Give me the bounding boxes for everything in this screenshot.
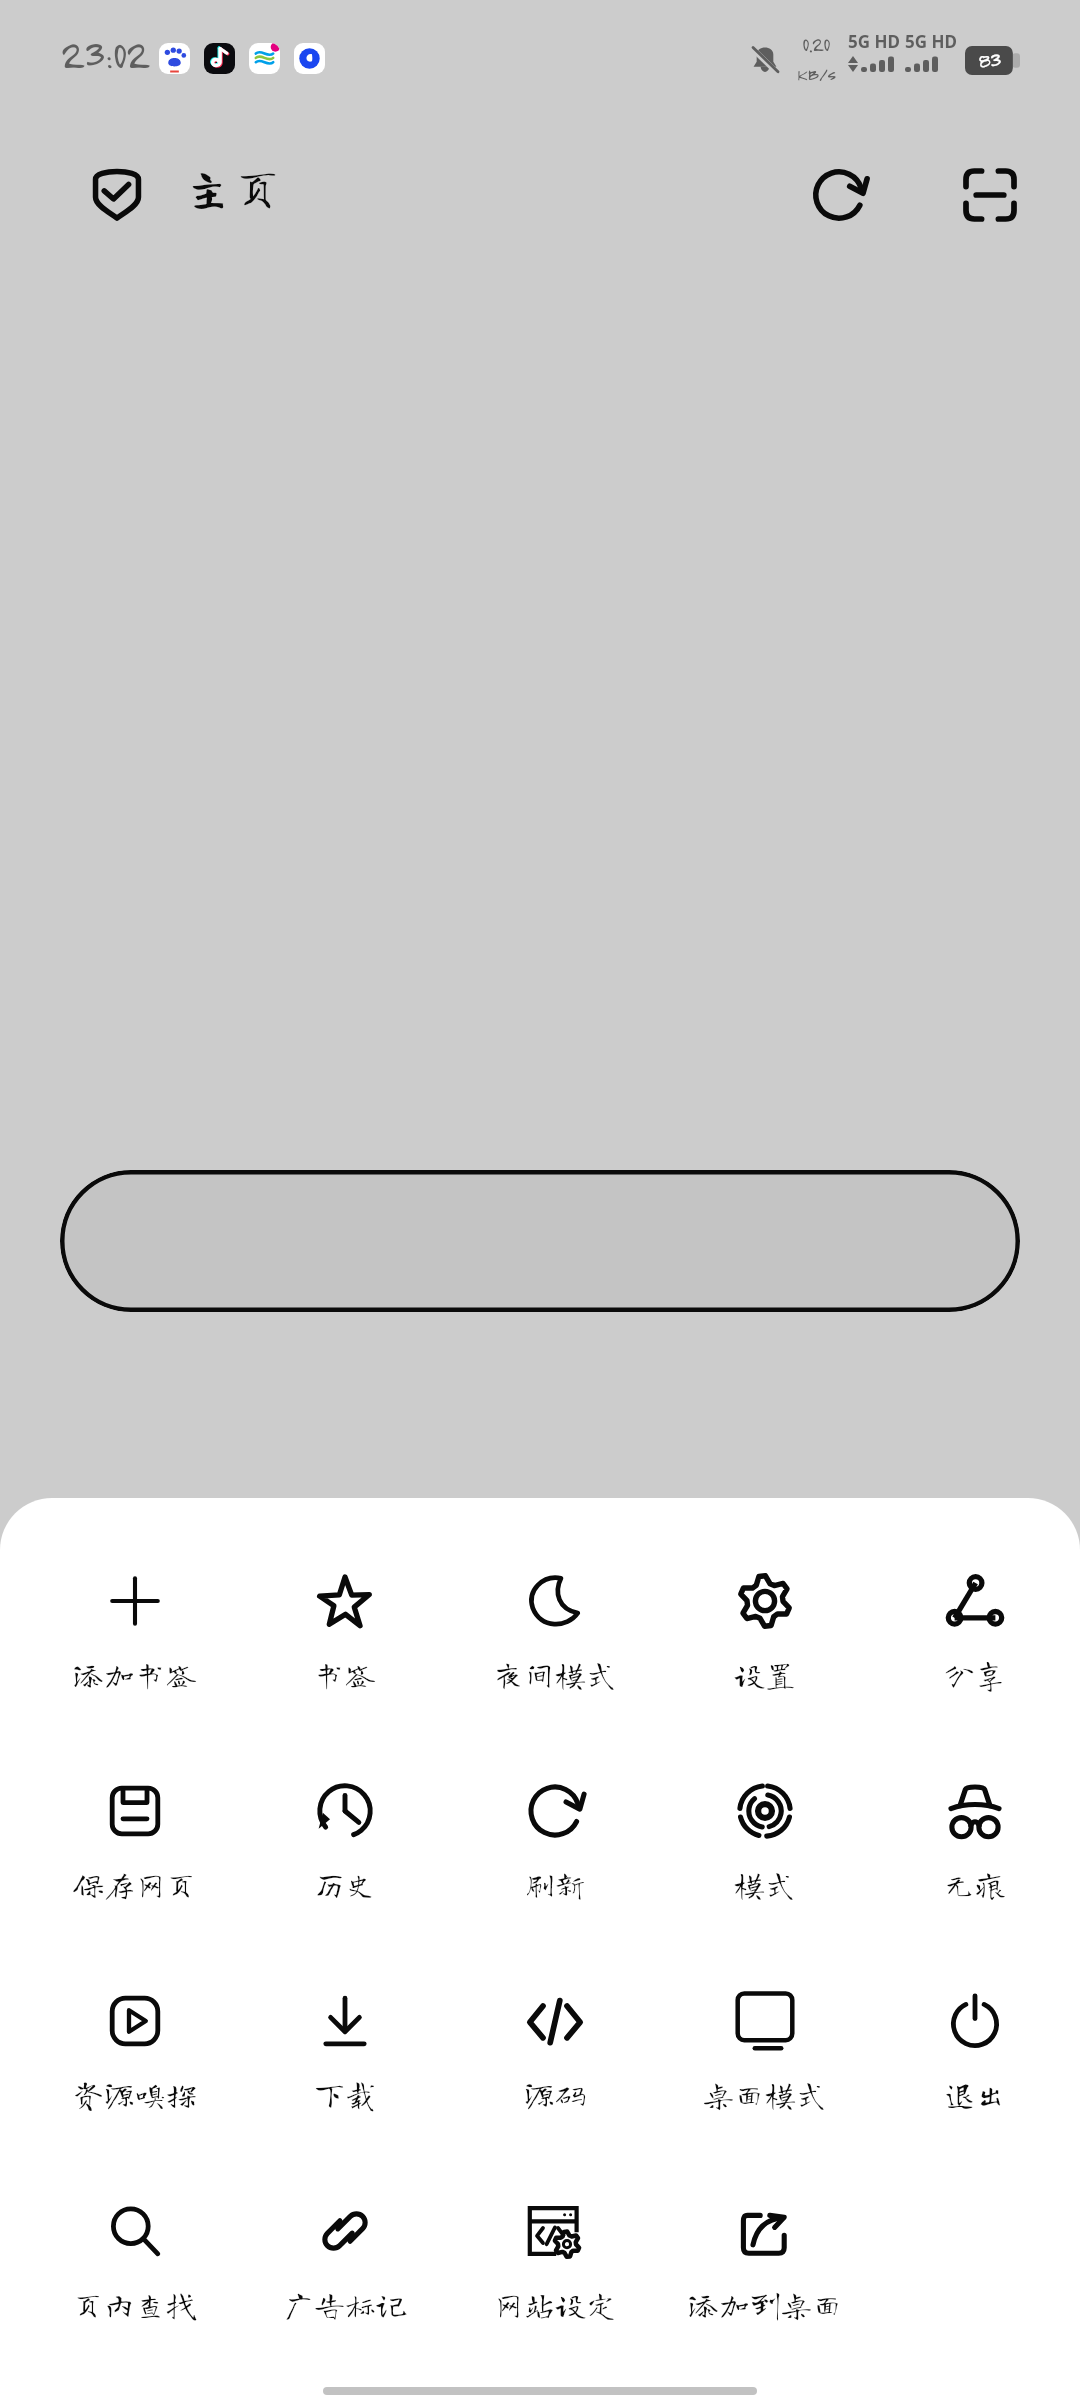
staticText: 模式	[734, 1869, 796, 1900]
button[interactable]: 页内查找	[30, 2197, 240, 2400]
staticText: 刷新	[524, 1869, 586, 1900]
button[interactable]: 资源嗅探	[30, 1987, 240, 2197]
staticText: 5G HD	[905, 30, 957, 53]
button[interactable]: 书签	[240, 1567, 450, 1777]
staticText: 5G HD	[848, 30, 900, 53]
button[interactable]: 主页	[88, 142, 307, 242]
staticText: 下载	[314, 2079, 376, 2110]
staticText: 0.20	[802, 31, 830, 56]
staticText: 夜间模式	[493, 1659, 617, 1690]
button[interactable]: 广告标记	[240, 2197, 450, 2400]
button[interactable]: Scan	[942, 147, 1038, 243]
button[interactable]: 夜间模式	[450, 1567, 660, 1777]
button[interactable]: 刷新	[450, 1777, 660, 1987]
button[interactable]: Refresh	[791, 147, 887, 243]
staticText: 历史	[314, 1869, 376, 1900]
button[interactable]: 源码	[450, 1987, 660, 2197]
button[interactable]: 网站设定	[450, 2197, 660, 2400]
button[interactable]: 保存网页	[30, 1777, 240, 1987]
staticText: 分享	[944, 1659, 1006, 1690]
button[interactable]: Search	[60, 1170, 1020, 1312]
staticText: 无痕	[944, 1869, 1006, 1900]
staticText: 页内查找	[73, 2289, 197, 2320]
staticText: 广告标记	[283, 2289, 407, 2320]
button[interactable]: 分享	[870, 1567, 1080, 1777]
staticText: 23:02	[60, 28, 149, 78]
staticText: 源码	[524, 2079, 586, 2110]
staticText: 添加到桌面	[688, 2289, 843, 2320]
staticText: 添加书签	[73, 1659, 197, 1690]
staticText: 资源嗅探	[73, 2079, 197, 2110]
staticText: 桌面模式	[703, 2079, 827, 2110]
button[interactable]: 设置	[660, 1567, 870, 1777]
staticText: 退出	[944, 2079, 1006, 2110]
staticText: 书签	[314, 1659, 376, 1690]
button[interactable]: 添加书签	[30, 1567, 240, 1777]
button[interactable]: 退出	[870, 1987, 1080, 2197]
button[interactable]: 添加到桌面	[660, 2197, 870, 2400]
button[interactable]: 模式	[660, 1777, 870, 1987]
staticText: KB/s	[797, 62, 836, 85]
staticText: 设置	[734, 1659, 796, 1690]
staticText: 主页	[183, 162, 283, 212]
button[interactable]: 下载	[240, 1987, 450, 2197]
staticText: 保存网页	[73, 1869, 197, 1900]
staticText: 83	[978, 46, 1001, 73]
button[interactable]: 无痕	[870, 1777, 1080, 1987]
staticText: 网站设定	[493, 2289, 617, 2320]
button[interactable]: 历史	[240, 1777, 450, 1987]
button[interactable]: 桌面模式	[660, 1987, 870, 2197]
